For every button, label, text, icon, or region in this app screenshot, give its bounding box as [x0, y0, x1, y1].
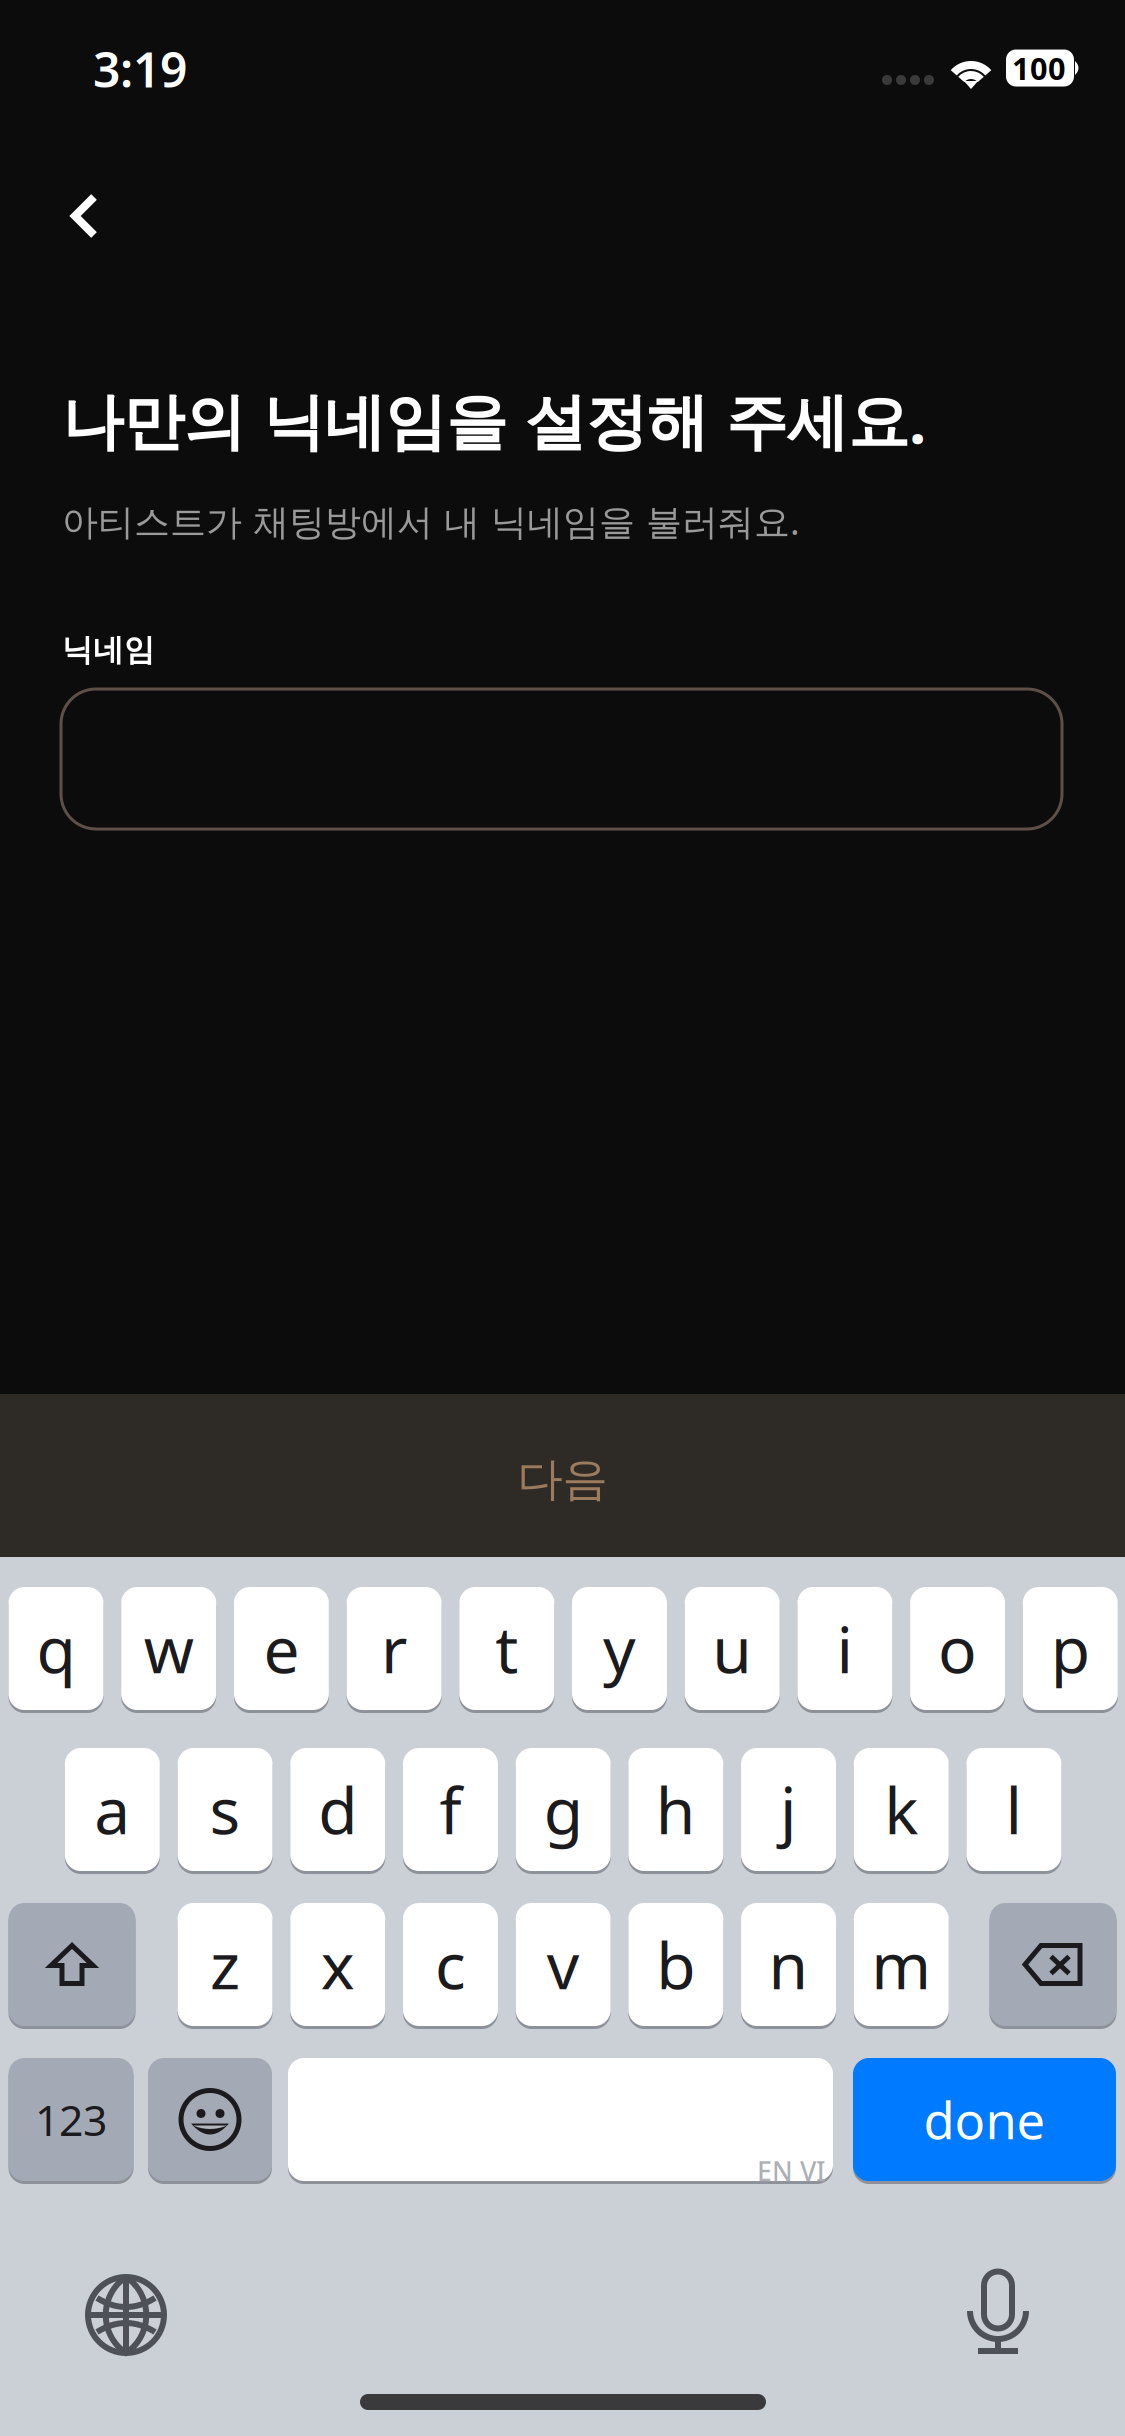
- staticText: m: [871, 1922, 931, 2007]
- button[interactable]: w: [121, 1587, 216, 1713]
- button[interactable]: l: [966, 1748, 1061, 1874]
- staticText: g: [544, 1767, 583, 1852]
- staticText: a: [94, 1767, 130, 1852]
- staticText: q: [36, 1606, 75, 1691]
- staticText: n: [768, 1922, 808, 2007]
- staticText: EN VI: [757, 2153, 825, 2189]
- button[interactable]: Space: [288, 2058, 833, 2184]
- staticText: t: [495, 1606, 518, 1691]
- staticText: h: [656, 1767, 696, 1852]
- staticText: 아티스트가 채팅방에서 내 닉네임을 불러줘요.: [62, 497, 800, 545]
- button[interactable]: Shift: [8, 1903, 135, 2029]
- button[interactable]: 다음: [0, 1398, 1125, 1561]
- staticText: i: [836, 1606, 853, 1691]
- button[interactable]: x: [290, 1903, 385, 2029]
- staticText: c: [435, 1922, 466, 2007]
- staticText: z: [210, 1922, 240, 2007]
- staticText: u: [712, 1606, 752, 1691]
- staticText: e: [263, 1606, 299, 1691]
- button[interactable]: j: [741, 1748, 836, 1874]
- button[interactable]: y: [572, 1587, 667, 1713]
- staticText: 나만의 닉네임을 설정해 주세요.: [62, 379, 926, 461]
- button[interactable]: s: [178, 1748, 273, 1874]
- button[interactable]: f: [403, 1748, 498, 1874]
- button[interactable]: d: [290, 1748, 385, 1874]
- button[interactable]: t: [459, 1587, 554, 1713]
- button[interactable]: z: [178, 1903, 273, 2029]
- button[interactable]: a: [65, 1748, 160, 1874]
- button[interactable]: i: [797, 1587, 892, 1713]
- button[interactable]: Nickname text field: [61, 689, 1062, 829]
- button[interactable]: k: [854, 1748, 949, 1874]
- staticText: 100: [1012, 48, 1066, 88]
- staticText: o: [938, 1606, 977, 1691]
- button[interactable]: Switch keyboard: [86, 2275, 166, 2355]
- staticText: 다음: [517, 1452, 607, 1507]
- staticText: j: [780, 1767, 797, 1852]
- button[interactable]: e: [234, 1587, 329, 1713]
- staticText: k: [884, 1767, 918, 1852]
- staticText: w: [144, 1606, 194, 1691]
- button[interactable]: Emoji: [148, 2058, 272, 2184]
- staticText: r: [381, 1606, 407, 1691]
- staticText: y: [603, 1606, 636, 1691]
- button[interactable]: h: [628, 1748, 723, 1874]
- button[interactable]: m: [854, 1903, 949, 2029]
- button[interactable]: o: [910, 1587, 1005, 1713]
- button[interactable]: Delete: [989, 1903, 1116, 2029]
- staticText: d: [318, 1767, 357, 1852]
- button[interactable]: Done: [853, 2058, 1116, 2184]
- staticText: s: [210, 1767, 241, 1852]
- staticText: x: [321, 1922, 355, 2007]
- button[interactable]: v: [516, 1903, 611, 2029]
- button[interactable]: q: [8, 1587, 103, 1713]
- button[interactable]: p: [1023, 1587, 1118, 1713]
- button[interactable]: Dictation: [970, 2269, 1026, 2355]
- staticText: 123: [35, 2091, 107, 2148]
- button[interactable]: Back: [29, 161, 139, 271]
- button[interactable]: g: [516, 1748, 611, 1874]
- button[interactable]: c: [403, 1903, 498, 2029]
- staticText: done: [923, 2086, 1045, 2153]
- staticText: f: [439, 1767, 461, 1852]
- staticText: b: [656, 1922, 695, 2007]
- button[interactable]: b: [628, 1903, 723, 2029]
- button[interactable]: r: [347, 1587, 442, 1713]
- button[interactable]: Numbers: [8, 2058, 133, 2184]
- staticText: v: [547, 1922, 580, 2007]
- button[interactable]: u: [685, 1587, 780, 1713]
- staticText: 닉네임: [62, 631, 155, 669]
- staticText: l: [1005, 1767, 1022, 1852]
- staticText: 3:19: [93, 37, 187, 101]
- staticText: p: [1051, 1606, 1090, 1691]
- button[interactable]: n: [741, 1903, 836, 2029]
